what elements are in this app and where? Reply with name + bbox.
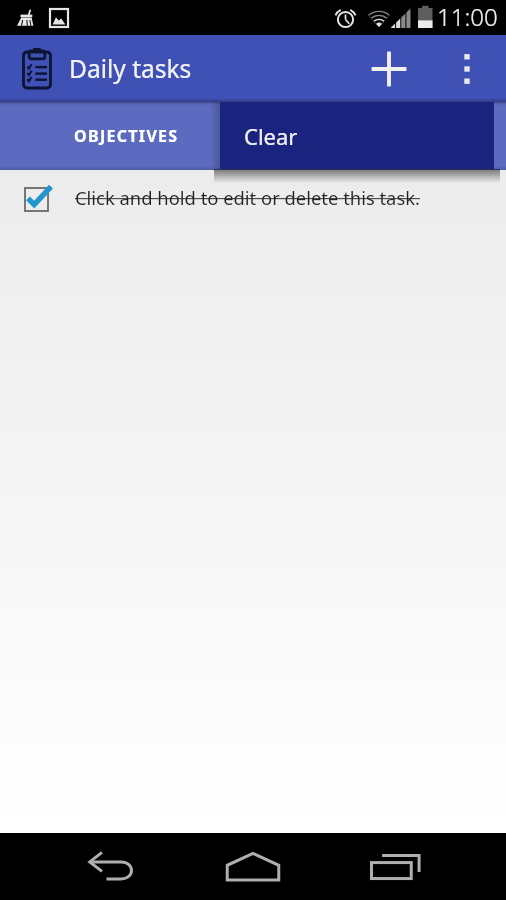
staticText: Clear	[244, 121, 298, 151]
button[interactable]: Back	[78, 833, 146, 900]
button[interactable]: Home	[219, 833, 287, 900]
staticText: Daily tasks	[69, 52, 192, 85]
staticText: OBJECTIVES	[74, 125, 179, 147]
button[interactable]: Click and hold to edit or delete this ta…	[0, 170, 506, 228]
button[interactable]: More options	[437, 39, 497, 99]
staticText: 11:00	[437, 0, 498, 33]
button[interactable]: Clear	[220, 102, 494, 169]
button[interactable]: Recent apps	[361, 833, 429, 900]
button[interactable]: OBJECTIVES	[0, 102, 253, 170]
button[interactable]: Add task	[359, 39, 419, 99]
staticText: Click and hold to edit or delete this ta…	[75, 185, 420, 210]
